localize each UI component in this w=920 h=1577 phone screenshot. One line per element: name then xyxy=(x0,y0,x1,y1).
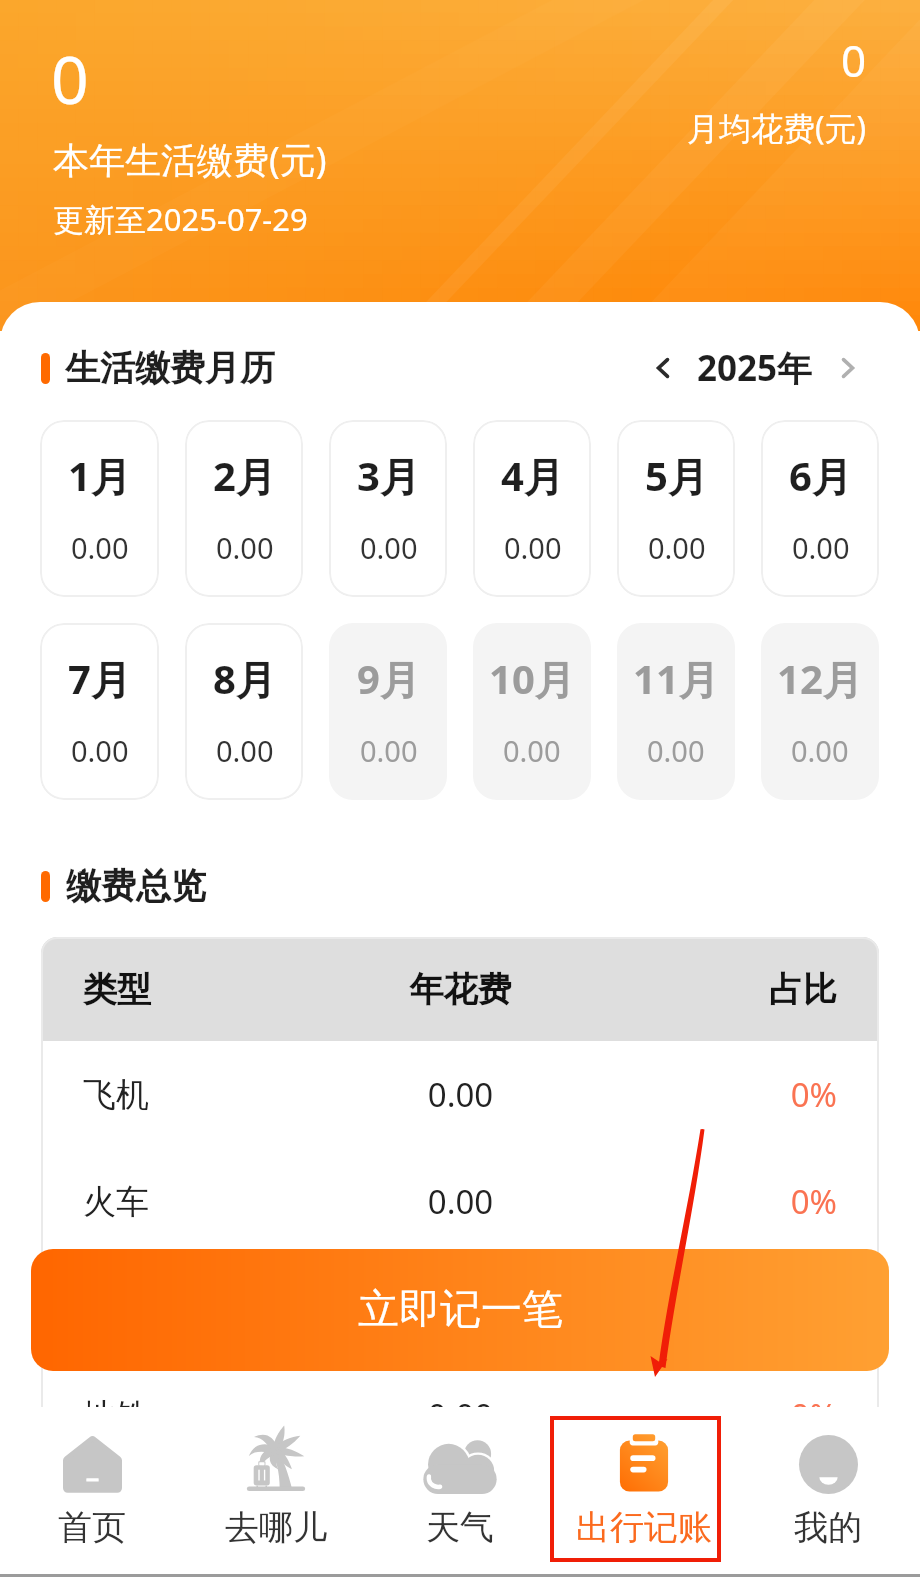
button[interactable]: 去哪儿 xyxy=(184,1407,368,1577)
staticText: 0.00 xyxy=(503,731,561,770)
staticText: 0% xyxy=(600,1393,837,1438)
staticText: 地铁 xyxy=(83,1395,321,1437)
staticText: 0.00 xyxy=(71,731,129,770)
staticText: 0.00 xyxy=(321,1179,600,1224)
staticText: 年花费 xyxy=(321,968,600,1011)
button[interactable]: 1月 xyxy=(40,420,159,597)
staticText: 更新至2025-07-29 xyxy=(53,198,308,240)
staticText: 0% xyxy=(600,1286,837,1331)
button[interactable]: 5月 xyxy=(617,420,735,597)
staticText: 天气 xyxy=(426,1506,494,1549)
button[interactable]: 我的 xyxy=(736,1407,920,1577)
staticText: 0.00 xyxy=(71,528,129,567)
staticText: 占比 xyxy=(600,968,837,1011)
staticText: 立即记一笔 xyxy=(358,1284,563,1336)
button[interactable]: 天气 xyxy=(368,1407,552,1577)
staticText: 0.00 xyxy=(792,528,850,567)
staticText: 0 xyxy=(841,30,867,90)
staticText: 0.00 xyxy=(321,1286,600,1331)
button[interactable]: Previous year xyxy=(641,346,685,390)
staticText: 2025年 xyxy=(697,344,813,392)
button[interactable]: 7月 xyxy=(40,623,159,800)
staticText: 0.00 xyxy=(360,731,418,770)
staticText: 0 xyxy=(51,33,89,123)
staticText: 生活缴费月历 xyxy=(65,346,275,390)
button[interactable]: 3月 xyxy=(329,420,447,597)
staticText: 6月 xyxy=(789,448,852,503)
staticText: 0.00 xyxy=(791,731,849,770)
button[interactable]: 2月 xyxy=(185,420,303,597)
staticText: 缴费总览 xyxy=(66,864,206,908)
button[interactable]: Next year xyxy=(826,346,870,390)
staticText: 去哪儿 xyxy=(225,1506,327,1549)
staticText: 0.00 xyxy=(216,731,274,770)
button[interactable]: 11月 xyxy=(617,623,735,800)
button[interactable]: 火车 xyxy=(41,1148,879,1255)
staticText: 出行记账 xyxy=(576,1506,712,1549)
staticText: 0% xyxy=(600,1179,837,1224)
button[interactable]: 飞机 xyxy=(41,1041,879,1148)
staticText: 3月 xyxy=(357,448,420,503)
staticText: 8月 xyxy=(213,651,276,706)
staticText: 9月 xyxy=(357,651,420,706)
staticText: 1月 xyxy=(68,448,131,503)
staticText: 7月 xyxy=(68,651,131,706)
button[interactable]: 立即记一笔 xyxy=(31,1249,889,1371)
staticText: 本年生活缴费(元) xyxy=(53,135,327,184)
staticText: 0% xyxy=(600,1072,837,1117)
button[interactable]: 汽车 xyxy=(41,1255,879,1362)
staticText: 飞机 xyxy=(83,1074,321,1116)
staticText: 我的 xyxy=(794,1506,862,1549)
button[interactable]: 10月 xyxy=(473,623,591,800)
button[interactable]: 4月 xyxy=(473,420,591,597)
staticText: 0.00 xyxy=(321,1393,600,1438)
staticText: 2月 xyxy=(213,448,276,503)
staticText: 5月 xyxy=(645,448,708,503)
staticText: 月均花费(元) xyxy=(687,106,867,150)
staticText: 0.00 xyxy=(647,731,705,770)
staticText: 类型 xyxy=(83,968,321,1011)
staticText: 0.00 xyxy=(321,1072,600,1117)
button[interactable]: 9月 xyxy=(329,623,447,800)
staticText: 0.00 xyxy=(216,528,274,567)
staticText: 0.00 xyxy=(504,528,562,567)
staticText: 火车 xyxy=(83,1181,321,1223)
button[interactable]: 12月 xyxy=(761,623,879,800)
staticText: 10月 xyxy=(489,651,575,706)
staticText: 11月 xyxy=(633,651,719,706)
staticText: 0.00 xyxy=(648,528,706,567)
button[interactable]: 6月 xyxy=(761,420,879,597)
staticText: 汽车 xyxy=(83,1288,321,1330)
staticText: 12月 xyxy=(777,651,863,706)
staticText: 4月 xyxy=(501,448,564,503)
button[interactable]: 出行记账 xyxy=(552,1407,736,1577)
staticText: 0.00 xyxy=(360,528,418,567)
button[interactable]: 8月 xyxy=(185,623,303,800)
button[interactable]: 首页 xyxy=(0,1407,184,1577)
button[interactable]: 地铁 xyxy=(41,1362,879,1469)
staticText: 首页 xyxy=(58,1506,126,1549)
